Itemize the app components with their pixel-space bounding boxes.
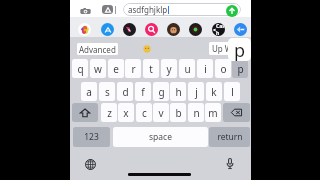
button[interactable]: App 7 [234, 23, 247, 36]
button[interactable]: x [118, 103, 134, 122]
staticText: s [105, 85, 110, 99]
button[interactable]: f [135, 82, 151, 101]
button[interactable]: i [197, 59, 213, 78]
staticText: e [113, 62, 119, 76]
button[interactable]: b [170, 103, 186, 122]
button[interactable]: App 0 [78, 23, 91, 36]
button[interactable]: k [206, 82, 222, 101]
button[interactable] [142, 44, 151, 53]
staticText: t [149, 62, 153, 76]
staticText: i [204, 62, 207, 76]
button[interactable]: Camera [79, 5, 91, 17]
staticText: space [149, 131, 172, 143]
button[interactable]: n [188, 103, 204, 122]
staticText: d [122, 85, 129, 99]
staticText: k [211, 85, 217, 99]
button[interactable]: App 3 [145, 23, 158, 36]
staticText: Up W [212, 43, 233, 54]
staticText: w [94, 62, 102, 76]
button[interactable]: z [101, 103, 117, 122]
button[interactable]: App 4 [167, 23, 180, 36]
button[interactable] [223, 103, 250, 122]
button[interactable]: y [161, 59, 177, 78]
staticText: a [86, 85, 92, 99]
staticText: Advanced [79, 44, 116, 55]
button[interactable]: p [232, 59, 248, 78]
button[interactable]: Send [226, 5, 238, 17]
button[interactable]: h [170, 82, 186, 101]
button[interactable]: Up W [209, 42, 242, 55]
button[interactable]: g [153, 82, 169, 101]
staticText: return [217, 131, 243, 143]
button[interactable]: m [205, 103, 221, 122]
button[interactable]: q [72, 59, 88, 78]
staticText: y [166, 62, 172, 76]
staticText: asdfghjklp [128, 4, 168, 15]
staticText: u [184, 62, 191, 76]
button[interactable]: 123 [73, 127, 110, 147]
staticText: Cash [216, 23, 225, 36]
staticText: r [131, 62, 136, 76]
button[interactable]: u [179, 59, 195, 78]
button[interactable]: a [81, 82, 97, 101]
button[interactable]: return [209, 127, 250, 147]
staticText: q [77, 62, 84, 76]
staticText: o [220, 62, 227, 76]
button[interactable]: t [143, 59, 159, 78]
button[interactable]: asdfghjklp [123, 3, 241, 16]
button[interactable]: d [117, 82, 133, 101]
button[interactable] [72, 103, 98, 122]
staticText: m [208, 106, 218, 120]
staticText: f [141, 85, 145, 99]
staticText: z [107, 106, 112, 120]
button[interactable]: App 2 [123, 23, 136, 36]
button[interactable]: v [153, 103, 169, 122]
button[interactable]: App 1 [101, 23, 114, 36]
staticText: 123 [84, 131, 99, 143]
button[interactable]: s [99, 82, 115, 101]
staticText: b [175, 106, 182, 120]
button[interactable]: e [108, 59, 124, 78]
button[interactable]: Advanced [77, 43, 118, 55]
staticText: p [234, 38, 246, 61]
staticText: n [193, 106, 200, 120]
staticText: c [142, 106, 147, 120]
button[interactable]: j [188, 82, 204, 101]
button[interactable]: r [125, 59, 141, 78]
button[interactable]: l [224, 82, 240, 101]
staticText: x [123, 106, 129, 120]
staticText: g [158, 85, 165, 99]
staticText: h [175, 85, 182, 99]
staticText: p [237, 62, 244, 76]
button[interactable]: w [90, 59, 106, 78]
button[interactable]: App 5 [189, 23, 202, 36]
staticText: l [231, 85, 234, 99]
staticText: v [158, 106, 164, 120]
button[interactable]: Change keyboard [83, 157, 97, 171]
button[interactable]: c [136, 103, 152, 122]
staticText: j [195, 85, 198, 99]
button[interactable]: Dictate [223, 156, 237, 170]
button[interactable]: space [113, 127, 208, 147]
button[interactable]: App 6 [212, 23, 225, 36]
button[interactable]: App Store [102, 5, 113, 14]
button[interactable]: o [215, 59, 231, 78]
